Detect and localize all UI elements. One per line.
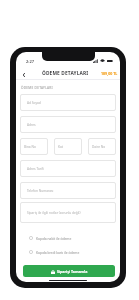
staticText: Ad Soyad [27,101,41,105]
staticText: Siparişi Tamamla [57,269,88,274]
staticText: Kapıda nakit ile ödeme [36,236,72,240]
staticText: 189,00 TL [101,71,118,76]
button[interactable]: Daire No [88,138,116,155]
staticText: Bina No [24,145,36,149]
staticText: 2:27 [26,59,34,64]
staticText: ÖDEME DETAYLARI [21,86,53,90]
button[interactable]: Kapıda nakit ile ödeme [20,236,116,240]
staticText: Telefon Numarası [27,189,54,193]
button[interactable]: Ad Soyad [20,94,116,111]
staticText: Sipariş ile ilgili notlar (zorunlu değil… [27,211,81,215]
staticText: Kapıda kredi kartı ile ödeme [36,250,80,254]
staticText: Kat [58,145,63,149]
button[interactable]: Siparişi Tamamla [23,265,115,277]
staticText: ÖDEME DETAYLARI [42,70,89,77]
button[interactable]: Kat [54,138,82,155]
button[interactable]: Adres Tarifi [20,160,116,177]
button[interactable]: Telefon Numarası [20,182,116,199]
button[interactable]: Bina No [20,138,48,155]
button[interactable]: Sipariş ile ilgili notlar (zorunlu değil… [20,202,116,223]
button[interactable]: Adres [20,116,116,133]
staticText: Adres Tarifi [27,167,44,171]
staticText: Daire No [92,145,106,149]
staticText: Adres [27,123,36,127]
button[interactable]: Back [19,70,28,79]
button[interactable]: Kapıda kredi kartı ile ödeme [20,250,116,254]
